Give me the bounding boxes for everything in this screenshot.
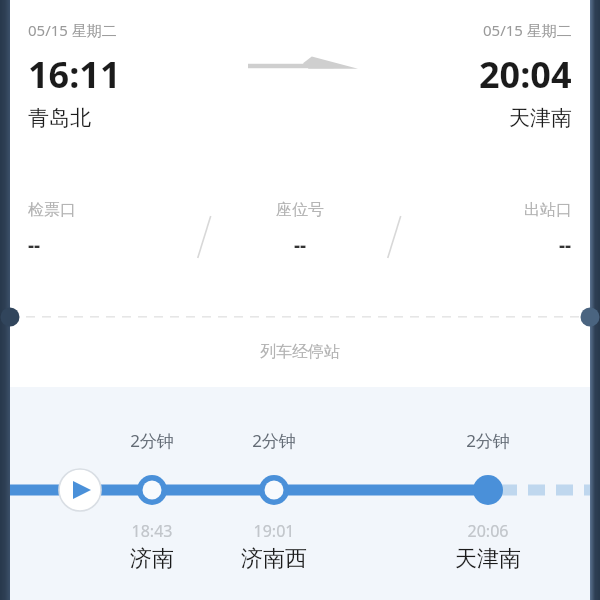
button[interactable]: 20:06: [433, 520, 543, 573]
button[interactable]: 19:01: [219, 520, 329, 573]
staticText: 16:11: [28, 50, 121, 99]
staticText: 济南: [97, 545, 207, 573]
button[interactable]: 2分钟: [444, 429, 532, 452]
staticText: --: [294, 232, 307, 258]
staticText: 2分钟: [230, 429, 318, 452]
staticText: 天津南: [433, 545, 543, 573]
staticText: 天津南: [509, 105, 572, 131]
staticText: 18:43: [97, 520, 207, 542]
staticText: 列车经停站: [260, 342, 340, 362]
staticText: 20:06: [433, 520, 543, 542]
staticText: 青岛北: [28, 105, 91, 131]
button[interactable]: 2分钟: [230, 429, 318, 452]
staticText: 出站口: [524, 200, 572, 220]
staticText: 检票口: [28, 200, 76, 220]
staticText: 2分钟: [444, 429, 532, 452]
staticText: 05/15 星期二: [28, 20, 117, 40]
staticText: 05/15 星期二: [483, 20, 572, 40]
button[interactable]: 18:43: [97, 520, 207, 573]
button[interactable]: 座位号: [218, 200, 382, 258]
staticText: 20:04: [479, 50, 572, 99]
staticText: 座位号: [276, 200, 324, 220]
button[interactable]: 检票口: [28, 200, 192, 258]
staticText: 济南西: [219, 545, 329, 573]
staticText: --: [28, 232, 41, 258]
button[interactable]: 2分钟: [108, 429, 196, 452]
staticText: 2分钟: [108, 429, 196, 452]
staticText: 19:01: [219, 520, 329, 542]
button[interactable]: Current position: [59, 469, 101, 511]
button[interactable]: 出站口: [408, 200, 572, 258]
staticText: --: [559, 232, 572, 258]
